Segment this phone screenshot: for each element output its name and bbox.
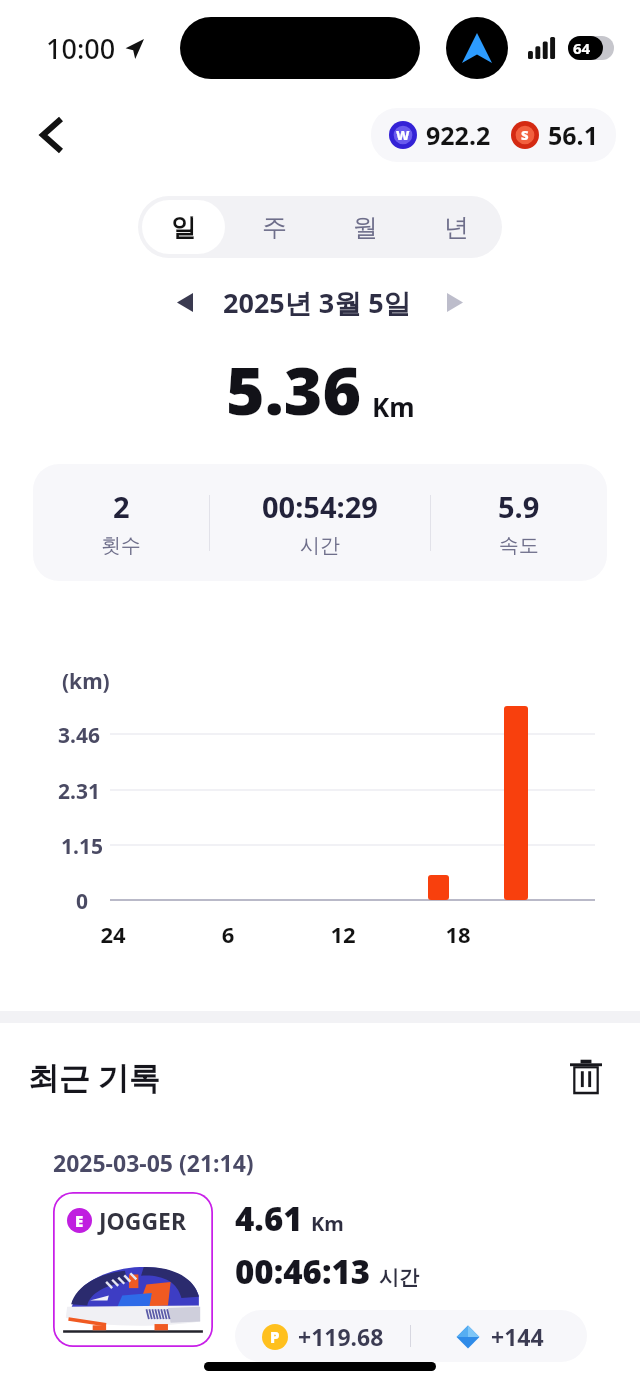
staticText: 1.15: [61, 832, 103, 861]
staticText: 5.9: [498, 487, 540, 526]
button[interactable]: 월: [324, 200, 407, 254]
staticText: 횟수: [101, 533, 141, 558]
button[interactable]: Delete records: [558, 1049, 614, 1105]
staticText: 922.2: [426, 118, 491, 152]
button[interactable]: Back: [26, 109, 78, 161]
staticText: (km): [62, 667, 110, 696]
staticText: 년: [444, 212, 469, 243]
staticText: Km: [372, 389, 415, 424]
staticText: 00:54:29: [262, 487, 378, 526]
staticText: P: [270, 1327, 280, 1347]
staticText: 일: [171, 212, 196, 243]
staticText: S: [521, 126, 529, 144]
button[interactable]: E: [53, 1192, 213, 1347]
staticText: 6: [198, 919, 258, 949]
button[interactable]: Previous day: [163, 280, 207, 324]
staticText: 64: [573, 38, 591, 58]
button[interactable]: P: [235, 1310, 587, 1362]
staticText: 0: [76, 887, 89, 916]
button[interactable]: 년: [415, 200, 498, 254]
staticText: W: [396, 126, 410, 144]
button[interactable]: 2: [33, 464, 607, 581]
staticText: +144: [491, 1321, 544, 1352]
staticText: 주: [262, 212, 287, 243]
staticText: 56.1: [548, 118, 598, 152]
staticText: 10:00: [46, 30, 116, 67]
staticText: 5.36: [226, 344, 362, 434]
staticText: 12: [313, 919, 373, 949]
staticText: 2025-03-05 (21:14): [53, 1147, 254, 1178]
staticText: 00:46:13: [235, 1249, 371, 1294]
staticText: 시간: [300, 533, 340, 558]
button[interactable]: W: [371, 108, 616, 162]
staticText: E: [75, 1211, 84, 1231]
staticText: 속도: [499, 533, 539, 558]
staticText: 3.46: [58, 721, 100, 750]
button[interactable]: 일: [142, 200, 225, 254]
staticText: 18: [428, 919, 488, 949]
staticText: +119.68: [298, 1321, 384, 1352]
staticText: Km: [311, 1210, 344, 1237]
staticText: 24: [83, 919, 143, 949]
button[interactable]: 주: [233, 200, 316, 254]
button[interactable]: Next day: [433, 280, 477, 324]
staticText: 시간: [379, 1265, 419, 1290]
staticText: 2: [113, 487, 130, 526]
staticText: 월: [353, 212, 378, 243]
button[interactable]: 2025-03-05 (21:14): [35, 1131, 605, 1362]
staticText: 4.61: [235, 1196, 303, 1241]
staticText: 2025년 3월 5일: [223, 284, 411, 321]
staticText: 최근 기록: [28, 1056, 161, 1098]
staticText: 2.31: [58, 777, 100, 806]
staticText: JOGGER: [99, 1205, 187, 1236]
